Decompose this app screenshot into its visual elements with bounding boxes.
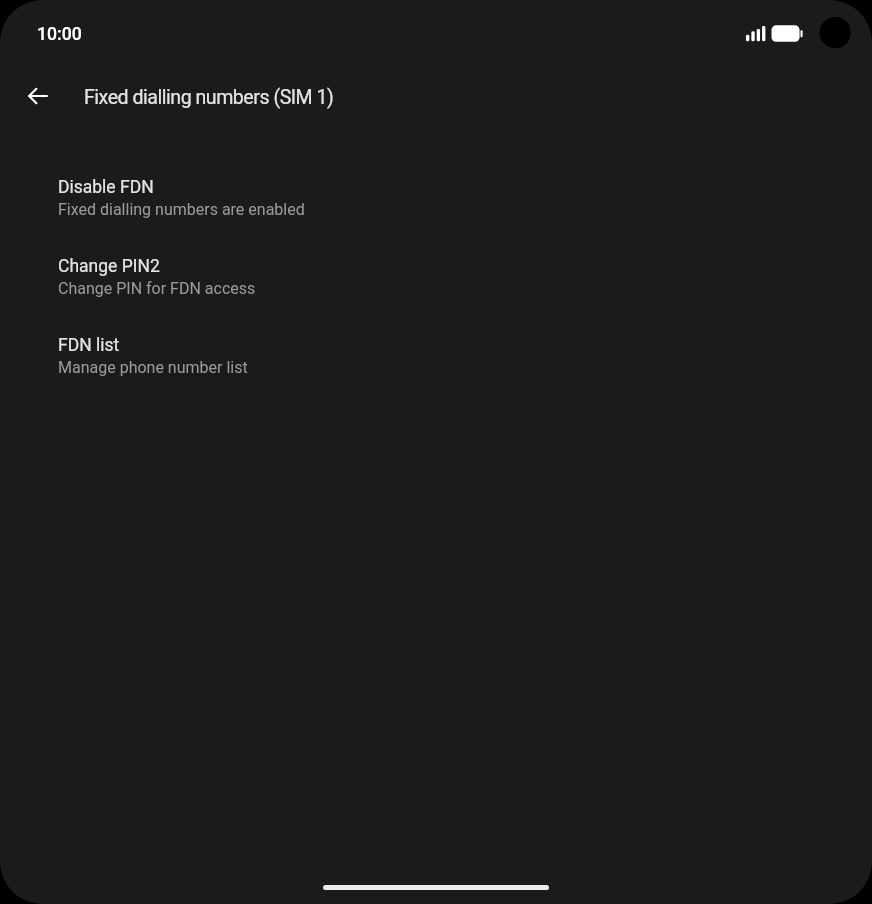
button[interactable]: Navigate up (15, 72, 63, 120)
staticText: Disable FDN (58, 177, 154, 198)
staticText: 10:00 (37, 24, 82, 45)
staticText: Manage phone number list (58, 358, 248, 377)
staticText: Change PIN for FDN access (58, 279, 256, 298)
staticText: FDN list (58, 335, 120, 356)
staticText: Fixed dialling numbers are enabled (58, 200, 305, 219)
button[interactable]: Disable FDN (0, 177, 872, 243)
button[interactable]: FDN list (0, 335, 872, 401)
staticText: Fixed dialling numbers (SIM 1) (84, 86, 334, 109)
staticText: Change PIN2 (58, 256, 160, 277)
button[interactable]: Change PIN2 (0, 256, 872, 322)
